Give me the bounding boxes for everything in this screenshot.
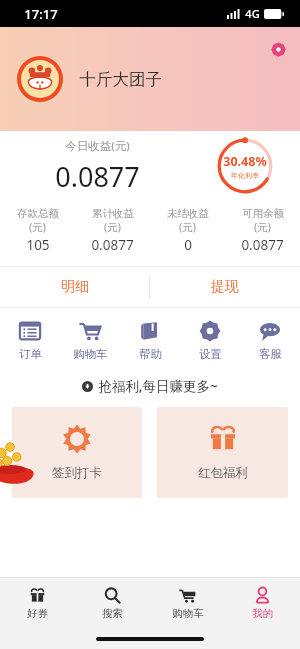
staticText: 30.48% bbox=[223, 153, 267, 170]
staticText: 红包福利 bbox=[198, 465, 248, 481]
button[interactable]: 搜索 bbox=[75, 578, 150, 628]
button[interactable]: 购物车 bbox=[60, 320, 120, 361]
button[interactable]: 签到打卡 bbox=[12, 407, 142, 498]
staticText: 订单 bbox=[19, 347, 42, 361]
staticText: 提现 bbox=[211, 278, 239, 296]
button[interactable]: 提现 bbox=[150, 267, 300, 307]
button[interactable]: 帮助 bbox=[120, 320, 180, 361]
button[interactable]: 明细 bbox=[0, 267, 149, 307]
staticText: 0.0877 bbox=[241, 236, 284, 254]
staticText: 购物车 bbox=[172, 607, 204, 620]
staticText: 0.0877 bbox=[55, 158, 140, 195]
staticText: 好券 bbox=[27, 607, 48, 620]
button[interactable]: 红包福利 bbox=[157, 407, 288, 498]
staticText: 帮助 bbox=[139, 347, 162, 361]
button[interactable]: 好券 bbox=[0, 578, 75, 628]
staticText: 4G bbox=[245, 6, 260, 21]
staticText: (元) bbox=[104, 220, 121, 234]
staticText: 105 bbox=[26, 236, 50, 254]
button[interactable]: 客服 bbox=[240, 320, 300, 361]
staticText: 购物车 bbox=[73, 347, 108, 361]
staticText: 存款总额 bbox=[17, 207, 59, 220]
staticText: 未结收益 bbox=[167, 207, 209, 220]
staticText: 抢福利,每日赚更多~ bbox=[98, 377, 218, 395]
staticText: 客服 bbox=[259, 347, 282, 361]
staticText: 设置 bbox=[199, 347, 222, 361]
staticText: 十斤大团子 bbox=[79, 69, 162, 90]
staticText: (元) bbox=[179, 220, 196, 234]
staticText: (元) bbox=[254, 220, 271, 234]
staticText: 签到打卡 bbox=[52, 465, 102, 481]
staticText: 0 bbox=[184, 236, 192, 254]
button[interactable]: Settings bbox=[264, 35, 292, 63]
staticText: 年化利率 bbox=[231, 171, 259, 180]
staticText: 明细 bbox=[61, 278, 89, 296]
staticText: 今日收益(元) bbox=[65, 138, 130, 154]
button[interactable]: 订单 bbox=[0, 320, 60, 361]
button[interactable]: 我的 bbox=[225, 578, 300, 628]
staticText: 我的 bbox=[252, 607, 273, 620]
button[interactable]: 购物车 bbox=[150, 578, 225, 628]
staticText: 可用余额 bbox=[242, 207, 284, 220]
staticText: 17:17 bbox=[24, 5, 58, 23]
button[interactable]: 设置 bbox=[180, 320, 240, 361]
staticText: (元) bbox=[29, 220, 46, 234]
staticText: 累计收益 bbox=[92, 207, 134, 220]
staticText: 搜索 bbox=[102, 607, 123, 620]
staticText: 0.0877 bbox=[91, 236, 134, 254]
